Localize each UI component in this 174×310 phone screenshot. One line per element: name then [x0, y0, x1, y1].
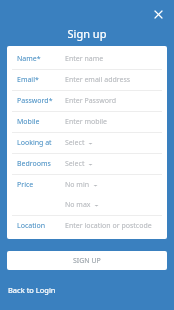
- staticText: Sign up: [0, 26, 174, 41]
- button[interactable]: Back to Login: [7, 283, 57, 297]
- staticText: Select: [65, 159, 85, 169]
- staticText: Back to Login: [8, 285, 56, 295]
- staticText: Mobile: [17, 117, 40, 127]
- button[interactable]: Close: [150, 6, 166, 22]
- staticText: Enter email address: [65, 75, 131, 85]
- button[interactable]: Mobile: [12, 112, 162, 132]
- button[interactable]: Password*: [12, 91, 162, 111]
- button[interactable]: Email*: [12, 70, 162, 90]
- staticText: Location: [17, 221, 46, 231]
- staticText: Enter location or postcode: [65, 221, 152, 231]
- staticText: Password*: [17, 96, 53, 106]
- staticText: Enter name: [65, 54, 104, 64]
- button[interactable]: Looking at: [12, 133, 162, 153]
- button[interactable]: Location: [12, 216, 162, 236]
- button[interactable]: No max: [12, 195, 162, 215]
- staticText: Select: [65, 138, 85, 148]
- staticText: Email*: [17, 75, 39, 85]
- staticText: SIGN UP: [73, 256, 101, 266]
- staticText: Looking at: [17, 138, 52, 148]
- staticText: No min: [65, 180, 90, 190]
- button[interactable]: Price: [12, 175, 162, 195]
- button[interactable]: Bedrooms: [12, 154, 162, 174]
- button[interactable]: Name*: [12, 49, 162, 69]
- staticText: Name*: [17, 54, 41, 64]
- staticText: Enter Password: [65, 96, 117, 106]
- staticText: Bedrooms: [17, 159, 51, 169]
- button[interactable]: SIGN UP: [7, 251, 167, 270]
- staticText: Enter mobile: [65, 117, 108, 127]
- staticText: Price: [17, 180, 34, 190]
- staticText: No max: [65, 200, 91, 210]
